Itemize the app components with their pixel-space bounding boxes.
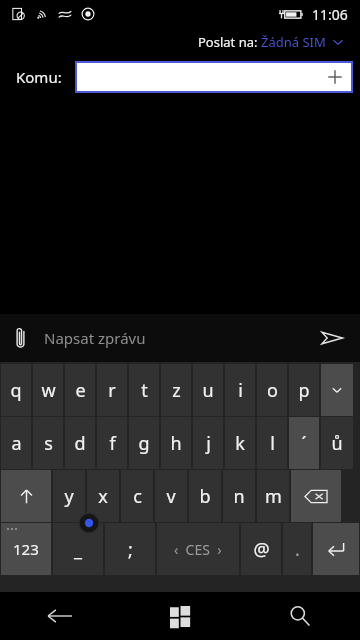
staticText: k	[235, 431, 245, 456]
staticText: b	[199, 484, 211, 509]
button[interactable]: ;	[105, 523, 155, 575]
button[interactable]: Poslat na:	[196, 30, 346, 54]
staticText: n	[233, 484, 245, 509]
staticText: u	[202, 378, 214, 403]
button[interactable]: r	[97, 364, 127, 416]
button[interactable]: a	[1, 417, 31, 469]
button[interactable]: s	[33, 417, 63, 469]
button[interactable]: p	[289, 364, 319, 416]
staticText: o	[267, 378, 278, 403]
staticText: w	[41, 378, 56, 403]
staticText: ‹ CES ›	[174, 540, 222, 559]
button[interactable]: j	[193, 417, 223, 469]
button[interactable]: g	[129, 417, 159, 469]
button[interactable]: f	[97, 417, 127, 469]
staticText: _	[74, 537, 82, 562]
button[interactable]: Search	[240, 592, 360, 640]
staticText: q	[10, 378, 22, 403]
button[interactable]: m	[257, 470, 289, 522]
button[interactable]: b	[189, 470, 221, 522]
button[interactable]: Space	[157, 523, 239, 575]
button[interactable]: i	[225, 364, 255, 416]
button[interactable]: Shift	[1, 470, 51, 522]
button[interactable]: Add recipient	[77, 63, 351, 91]
staticText: p	[298, 378, 310, 403]
staticText: g	[138, 431, 150, 456]
button[interactable]: Backspace	[291, 470, 341, 522]
staticText: r	[108, 378, 116, 403]
button[interactable]: @	[241, 523, 281, 575]
button[interactable]: k	[225, 417, 255, 469]
button[interactable]: ů	[321, 417, 353, 469]
other: Expand SIM selection	[332, 36, 344, 48]
staticText: Napsat zprávu	[44, 328, 146, 348]
button[interactable]: 123	[1, 523, 51, 575]
staticText: 11:06	[312, 5, 348, 24]
button[interactable]: l	[257, 417, 287, 469]
staticText: m	[265, 484, 282, 509]
button[interactable]: n	[223, 470, 255, 522]
staticText: i	[238, 378, 243, 403]
button[interactable]: .	[283, 523, 311, 575]
button[interactable]: q	[1, 364, 31, 416]
button[interactable]: v	[155, 470, 187, 522]
staticText: h	[170, 431, 182, 456]
button[interactable]: o	[257, 364, 287, 416]
other: Add recipient	[335, 69, 351, 85]
button[interactable]: u	[193, 364, 223, 416]
staticText: Poslat na:	[198, 33, 261, 51]
staticText: x	[98, 484, 108, 509]
staticText: s	[44, 431, 53, 456]
staticText: Žádná SIM	[261, 33, 326, 51]
button[interactable]: e	[65, 364, 95, 416]
staticText: c	[133, 484, 142, 509]
button[interactable]: h	[161, 417, 191, 469]
staticText: e	[75, 378, 86, 403]
staticText: y	[64, 484, 74, 509]
other: Send	[320, 326, 344, 350]
staticText: @	[253, 537, 270, 562]
button[interactable]: Hide keyboard	[321, 364, 353, 416]
button[interactable]: d	[65, 417, 95, 469]
button[interactable]: _	[53, 523, 103, 575]
staticText: ů	[331, 431, 343, 456]
button[interactable]: y	[53, 470, 85, 522]
staticText: v	[166, 484, 176, 509]
staticText: ;	[128, 537, 133, 562]
staticText: j	[206, 431, 211, 456]
button[interactable]: t	[129, 364, 159, 416]
staticText: t	[141, 378, 148, 403]
staticText: d	[74, 431, 86, 456]
staticText: l	[270, 431, 275, 456]
button[interactable]: Back	[0, 592, 120, 640]
other: Attach	[14, 327, 27, 349]
staticText: .	[295, 537, 300, 562]
button[interactable]: ´	[289, 417, 319, 469]
staticText: z	[172, 378, 181, 403]
button[interactable]: Enter	[313, 523, 359, 575]
staticText: ´	[301, 431, 307, 456]
staticText: Komu:	[16, 67, 62, 87]
button[interactable]: c	[121, 470, 153, 522]
button[interactable]: Start	[120, 592, 240, 640]
button[interactable]: Attach	[0, 314, 360, 362]
staticText: 123	[13, 539, 39, 559]
button[interactable]: z	[161, 364, 191, 416]
staticText: f	[109, 431, 116, 456]
staticText: a	[11, 431, 22, 456]
button[interactable]: w	[33, 364, 63, 416]
button[interactable]: x	[87, 470, 119, 522]
